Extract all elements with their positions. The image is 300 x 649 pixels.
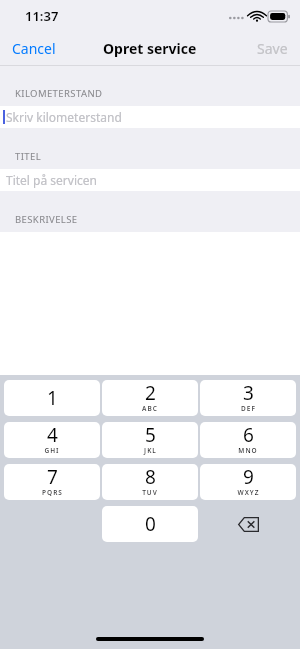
staticText: 11:37 bbox=[25, 7, 59, 25]
button[interactable]: 3 bbox=[200, 380, 296, 416]
button[interactable]: Save bbox=[245, 33, 300, 64]
button[interactable]: 8 bbox=[102, 464, 198, 500]
staticText: Opret service bbox=[103, 39, 197, 58]
staticText: Save bbox=[257, 39, 288, 58]
staticText: KILOMETERSTAND bbox=[15, 87, 103, 100]
staticText: 5 bbox=[145, 422, 156, 448]
staticText: JKL bbox=[144, 446, 157, 455]
button[interactable]: 1 bbox=[4, 380, 100, 416]
staticText: Cancel bbox=[12, 39, 56, 58]
staticText: BESKRIVELSE bbox=[15, 213, 78, 226]
button[interactable]: Cancel bbox=[0, 33, 68, 64]
staticText: 0 bbox=[145, 511, 156, 537]
button[interactable]: Backspace bbox=[200, 506, 296, 542]
button[interactable]: 5 bbox=[102, 422, 198, 458]
staticText: Skriv kilometerstand bbox=[6, 109, 122, 125]
staticText: 2 bbox=[145, 380, 156, 406]
staticText: 1 bbox=[47, 385, 58, 411]
button[interactable]: 0 bbox=[102, 506, 198, 542]
staticText: ABC bbox=[142, 404, 158, 413]
staticText: PQRS bbox=[42, 488, 63, 497]
staticText: 3 bbox=[243, 380, 254, 406]
staticText: TITEL bbox=[15, 150, 42, 163]
button[interactable]: Skriv kilometerstand bbox=[0, 106, 300, 128]
staticText: 7 bbox=[47, 464, 58, 490]
button[interactable]: 7 bbox=[4, 464, 100, 500]
staticText: 4 bbox=[47, 422, 58, 448]
staticText: MNO bbox=[238, 446, 258, 455]
staticText: DEF bbox=[241, 404, 256, 413]
staticText: WXYZ bbox=[237, 488, 260, 497]
staticText: 8 bbox=[145, 464, 156, 490]
staticText: Titel på servicen bbox=[6, 172, 97, 188]
staticText: 6 bbox=[243, 422, 254, 448]
button[interactable]: 4 bbox=[4, 422, 100, 458]
button[interactable]: 2 bbox=[102, 380, 198, 416]
button[interactable]: 6 bbox=[200, 422, 296, 458]
staticText: TUV bbox=[142, 488, 158, 497]
staticText: GHI bbox=[44, 446, 60, 455]
staticText: 9 bbox=[243, 464, 254, 490]
button[interactable]: 9 bbox=[200, 464, 296, 500]
button[interactable]: Titel på servicen bbox=[0, 169, 300, 191]
